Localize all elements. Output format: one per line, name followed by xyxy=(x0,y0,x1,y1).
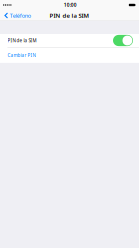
staticText: Cambiar PIN xyxy=(7,52,35,58)
button[interactable]: Teléfono xyxy=(0,10,34,21)
staticText: Teléfono xyxy=(10,12,31,19)
staticText: PIN de la SIM xyxy=(7,37,36,44)
staticText: PIN de la SIM xyxy=(49,11,89,20)
button[interactable]: PIN de la SIM xyxy=(0,34,139,47)
staticText: 10:00 xyxy=(64,2,77,8)
button[interactable]: Cambiar PIN xyxy=(0,47,139,63)
